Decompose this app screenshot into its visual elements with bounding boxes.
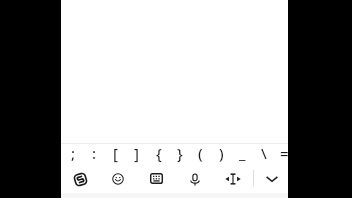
button[interactable]: Voice input xyxy=(182,167,206,191)
button[interactable]: _ xyxy=(232,141,253,165)
staticText: ; xyxy=(71,143,76,163)
button[interactable]: [ xyxy=(105,141,126,165)
button[interactable]: Emoji xyxy=(106,167,130,191)
button[interactable]: } xyxy=(169,141,190,165)
button[interactable]: Samsung keyboard settings xyxy=(68,167,92,191)
staticText: = xyxy=(280,143,289,163)
button[interactable]: \ xyxy=(253,141,274,165)
button[interactable]: ; xyxy=(63,141,84,165)
staticText: } xyxy=(177,143,183,163)
button[interactable]: Move cursor xyxy=(221,167,245,191)
button[interactable]: ( xyxy=(190,141,211,165)
staticText: [ xyxy=(113,143,118,163)
button[interactable]: = xyxy=(274,141,295,165)
button[interactable]: Keyboard layout xyxy=(144,167,168,191)
staticText: _ xyxy=(239,143,246,163)
staticText: { xyxy=(156,143,162,163)
button[interactable]: { xyxy=(148,141,169,165)
staticText: : xyxy=(92,143,97,163)
staticText: ] xyxy=(134,143,139,163)
button[interactable]: ) xyxy=(211,141,232,165)
button[interactable]: ] xyxy=(126,141,147,165)
button[interactable]: Hide keyboard xyxy=(260,167,284,191)
staticText: \ xyxy=(261,143,267,163)
button[interactable]: : xyxy=(84,141,105,165)
staticText: ( xyxy=(198,143,203,163)
staticText: ) xyxy=(219,143,224,163)
